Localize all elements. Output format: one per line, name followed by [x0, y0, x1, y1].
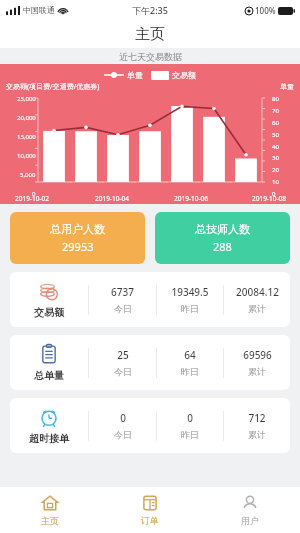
staticText: 69596	[243, 348, 272, 362]
staticText: 总单量	[34, 369, 64, 382]
staticText: 2019-10-04	[95, 194, 129, 203]
staticText: 下午2:35	[132, 4, 168, 16]
staticText: 712	[248, 411, 266, 425]
other: 总单量	[38, 343, 60, 365]
staticText: 19349.5	[171, 285, 209, 299]
staticText: 80	[272, 95, 279, 103]
button[interactable]: 总单量	[10, 335, 290, 390]
button[interactable]: 用户	[200, 487, 300, 533]
other: 超时接单	[38, 406, 60, 428]
staticText: 今日	[114, 429, 132, 440]
staticText: 50	[272, 131, 279, 139]
staticText: 2019-10-08	[252, 194, 286, 203]
staticText: 今日	[114, 303, 132, 314]
staticText: 25	[117, 348, 129, 362]
staticText: 交易额(项目费/交通费/优惠券)	[6, 82, 100, 92]
staticText: 20084.12	[236, 285, 279, 299]
staticText: 64	[184, 348, 196, 362]
staticText: 60	[272, 119, 279, 127]
staticText: 20	[272, 166, 279, 174]
staticText: 主页	[135, 25, 165, 44]
button[interactable]: 主页	[0, 487, 100, 533]
other: 交易额	[38, 280, 60, 302]
staticText: 100%	[255, 5, 276, 16]
staticText: 昨日	[181, 429, 199, 440]
staticText: 2019-10-06	[174, 194, 208, 203]
staticText: 30	[272, 154, 279, 162]
staticText: 总用户人数	[50, 222, 105, 236]
staticText: 2019-10-02	[15, 194, 49, 203]
staticText: 累计	[248, 303, 266, 314]
staticText: 10,000	[17, 152, 36, 160]
staticText: 累计	[248, 366, 266, 377]
staticText: 中国联通	[23, 5, 55, 15]
staticText: 单量	[280, 82, 294, 91]
button[interactable]: 总用户人数	[10, 212, 145, 264]
staticText: 25,000	[17, 95, 36, 103]
staticText: 交易额	[172, 70, 196, 80]
staticText: 近七天交易数据	[119, 51, 182, 62]
staticText: 昨日	[181, 366, 199, 377]
staticText: 单量	[127, 70, 143, 80]
staticText: 6737	[111, 285, 134, 299]
staticText: 5,000	[20, 171, 36, 179]
staticText: 10	[272, 178, 279, 186]
staticText: 70	[272, 107, 279, 115]
button[interactable]: 订单	[100, 487, 200, 533]
staticText: 0	[272, 190, 276, 198]
button[interactable]: 超时接单	[10, 398, 290, 453]
staticText: 15,000	[17, 133, 36, 141]
staticText: 超时接单	[29, 432, 69, 445]
staticText: 288	[213, 239, 232, 254]
staticText: 总技师人数	[195, 222, 250, 236]
staticText: 0	[120, 411, 126, 425]
staticText: 0	[32, 190, 36, 198]
staticText: 昨日	[181, 303, 199, 314]
staticText: 20,000	[17, 114, 36, 122]
staticText: 用户	[241, 515, 259, 526]
staticText: 订单	[141, 515, 159, 526]
staticText: 29953	[62, 239, 94, 254]
button[interactable]: 交易额	[10, 272, 290, 327]
staticText: 累计	[248, 429, 266, 440]
staticText: 主页	[41, 515, 59, 526]
button[interactable]: 总技师人数	[155, 212, 290, 264]
staticText: 交易额	[34, 306, 64, 319]
staticText: 0	[187, 411, 193, 425]
staticText: 40	[272, 143, 279, 151]
staticText: 今日	[114, 366, 132, 377]
